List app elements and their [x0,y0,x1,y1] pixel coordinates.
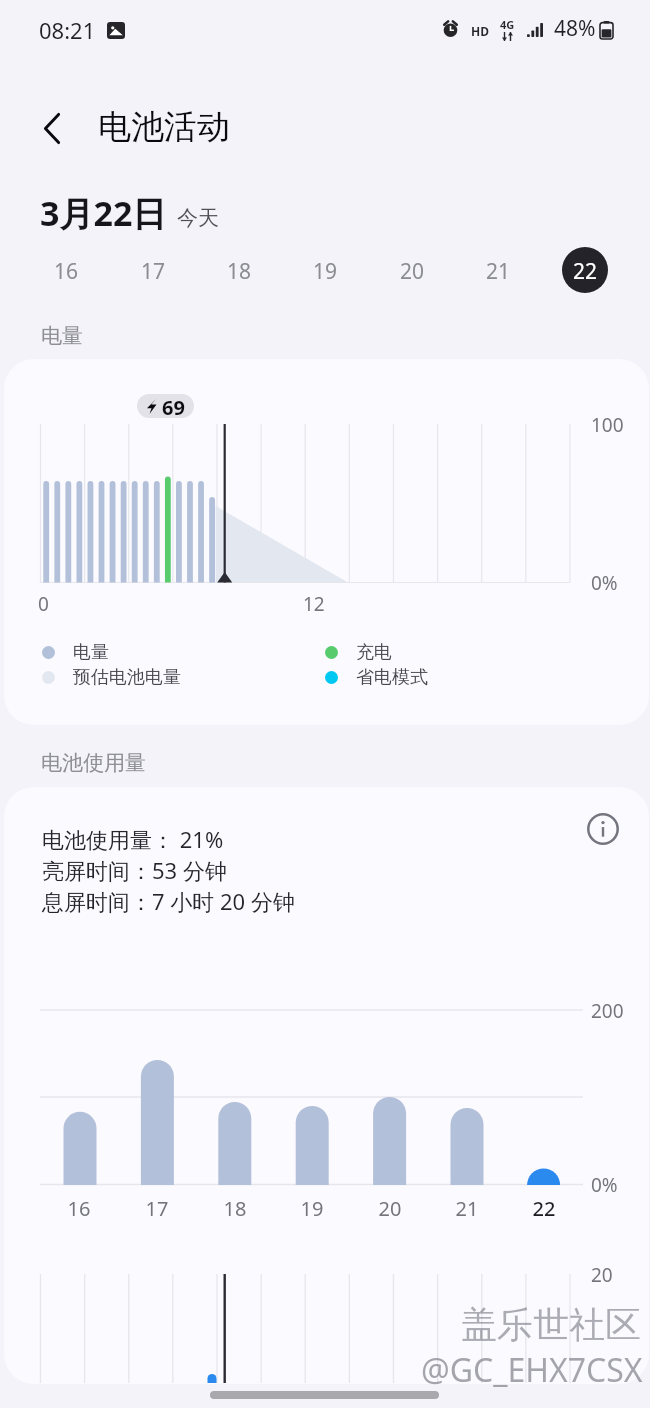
staticText: 电池活动 [98,106,230,148]
staticText: 4G [500,17,515,32]
staticText: 18 [209,257,269,286]
staticText: 0% [591,1172,618,1198]
staticText: 20 [591,1262,613,1288]
staticText: 电量 [41,323,83,349]
staticText: 08:21 [39,15,96,45]
staticText: 69 [162,394,185,418]
staticText: 18 [205,1195,265,1222]
staticText: 电池使用量： 21% [42,824,224,854]
staticText: @GC_EHX7CSX [421,1348,643,1392]
button[interactable] [36,247,96,293]
staticText: 20 [382,257,442,286]
staticText: HD [471,23,489,39]
staticText: 22 [555,257,615,286]
staticText: 充电 [356,641,392,664]
staticText: 20 [360,1195,420,1222]
staticText: 3月22日 [40,190,167,236]
staticText: 今天 [177,205,219,231]
staticText: 17 [127,1195,187,1222]
staticText: 17 [123,257,183,286]
staticText: 21 [468,257,528,286]
button[interactable]: Info [581,807,625,851]
staticText: 16 [49,1195,109,1222]
staticText: 亮屏时间：53 分钟 [42,855,227,885]
staticText: 100 [591,412,624,438]
button[interactable] [295,247,355,293]
staticText: 0% [591,570,618,596]
staticText: 16 [36,257,96,286]
staticText: 12 [303,591,325,617]
staticText: 息屏时间：7 小时 20 分钟 [42,886,295,916]
button[interactable] [123,247,183,293]
staticText: 200 [591,998,624,1024]
staticText: 19 [295,257,355,286]
button[interactable] [209,247,269,293]
staticText: 盖乐世社区 [461,1302,641,1347]
staticText: 22 [514,1195,574,1222]
staticText: 预估电池电量 [73,666,181,689]
button[interactable] [555,247,615,293]
button[interactable] [468,247,528,293]
staticText: 0 [38,591,49,617]
staticText: 电池使用量 [41,750,146,776]
staticText: 21 [437,1195,497,1222]
staticText: 48% [554,14,596,43]
button[interactable]: Back [26,102,78,154]
staticText: 电量 [73,641,109,664]
button[interactable] [562,247,608,293]
staticText: 省电模式 [356,666,428,689]
staticText: 19 [282,1195,342,1222]
button[interactable] [382,247,442,293]
